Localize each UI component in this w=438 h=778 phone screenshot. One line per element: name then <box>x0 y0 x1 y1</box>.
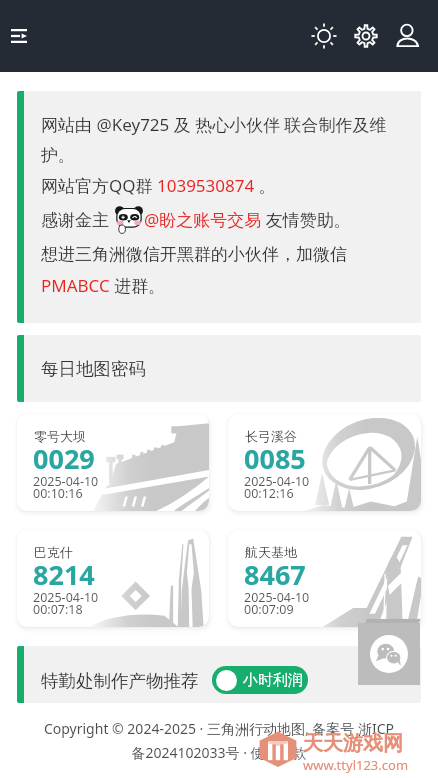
staticText: 00:07:09 <box>244 601 294 618</box>
staticText: 巴克什 <box>34 544 73 560</box>
staticText: Copyright © 2024-2025 · 三角洲行动地图, 备案号 浙IC… <box>40 719 398 762</box>
staticText: 想进三角洲微信开黑群的小伙伴，加微信 PMABCC 进群。 <box>41 242 393 297</box>
staticText: 8214 <box>33 556 95 593</box>
button[interactable]: WeChat <box>358 623 420 685</box>
staticText: 网站官方QQ群 1039530874 。 <box>41 174 276 197</box>
button[interactable]: 长弓溪谷 <box>228 414 421 511</box>
staticText: 2025-04-10 <box>244 589 310 606</box>
staticText: 2025-04-10 <box>33 589 99 606</box>
button[interactable]: 网站由 @Key725 及 热心小伙伴 联合制作及维护。 <box>17 91 421 323</box>
button[interactable]: 航天基地 <box>228 530 421 627</box>
staticText: 2025-04-10 <box>244 473 310 490</box>
staticText: 2025-04-10 <box>33 473 99 490</box>
staticText: @盼之账号交易 友情赞助。 <box>144 208 351 231</box>
staticText: 小时利润 <box>243 671 303 690</box>
button[interactable]: 零号大坝 <box>17 414 209 511</box>
button[interactable]: 每日地图密码 <box>17 335 421 402</box>
staticText: 长弓溪谷 <box>245 428 297 444</box>
button[interactable]: 特勤处制作产物推荐 <box>17 646 421 703</box>
staticText: www.ttyl123.com <box>303 756 409 774</box>
staticText: 航天基地 <box>245 544 297 560</box>
staticText: 00:10:16 <box>33 485 83 502</box>
staticText: 00:07:18 <box>33 601 83 618</box>
button[interactable]: 巴克什 <box>17 530 209 627</box>
staticText: 特勤处制作产物推荐 <box>41 670 199 692</box>
staticText: 0029 <box>33 440 95 477</box>
staticText: 零号大坝 <box>34 428 86 444</box>
button[interactable]: Settings <box>345 15 387 57</box>
staticText: 网站由 @Key725 及 热心小伙伴 联合制作及维护。 <box>41 113 393 166</box>
staticText: 0085 <box>244 440 306 477</box>
button[interactable]: Menu <box>0 17 38 55</box>
staticText: 8467 <box>244 556 306 593</box>
button[interactable]: Brightness <box>303 15 345 57</box>
button[interactable]: 小时利润 <box>216 666 308 694</box>
staticText: 每日地图密码 <box>41 358 146 380</box>
staticText: 感谢金主 <box>41 208 114 231</box>
button[interactable]: Account <box>387 15 429 57</box>
staticText: 00:12:16 <box>244 485 294 502</box>
staticText: 天天游戏网 <box>303 731 403 756</box>
